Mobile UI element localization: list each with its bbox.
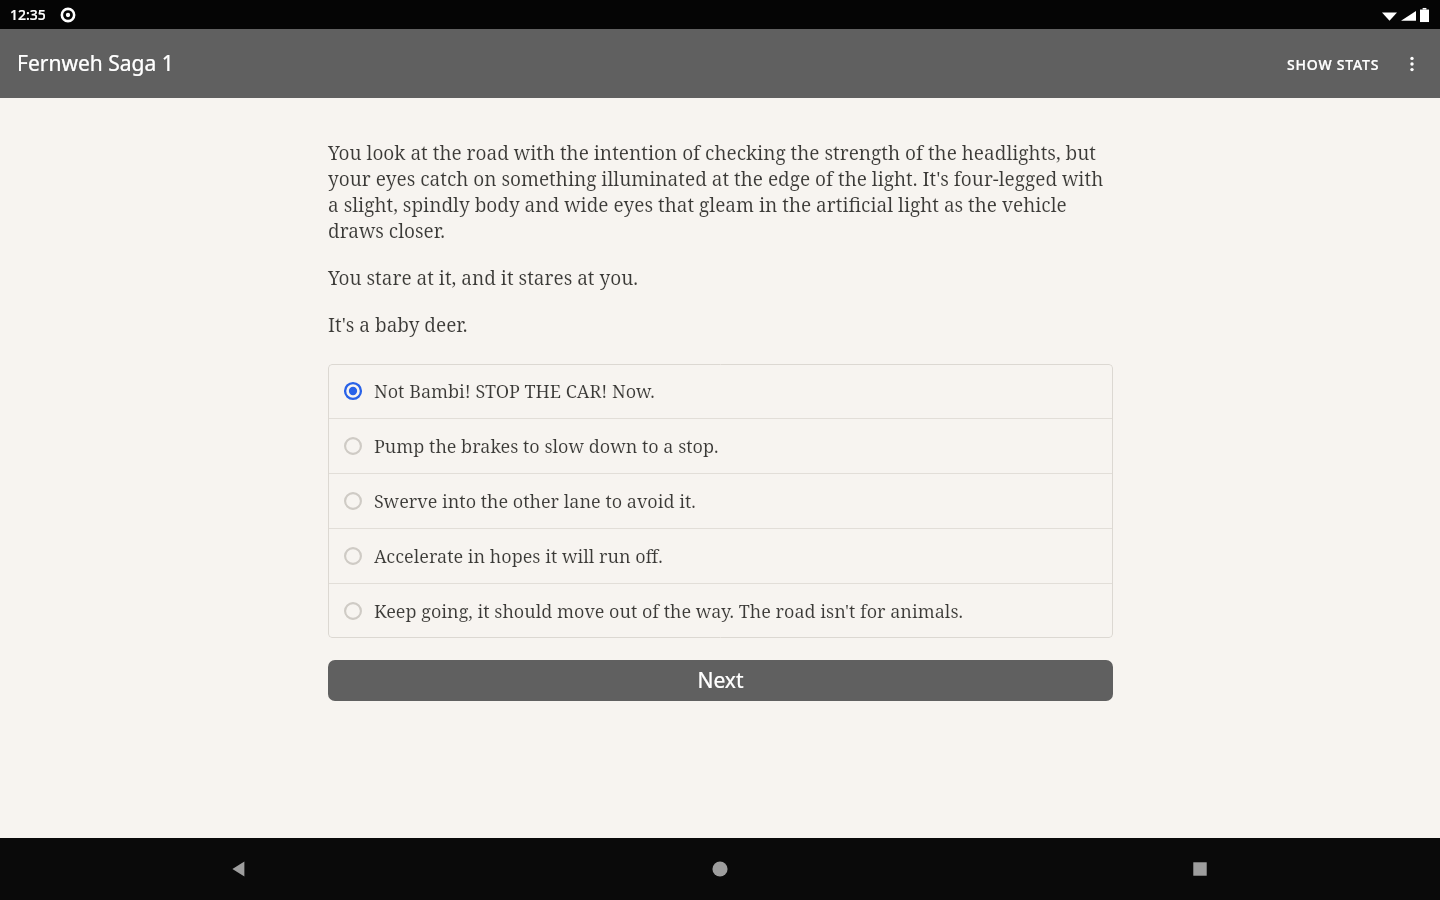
staticText: Fernweh Saga 1 (17, 49, 174, 78)
button[interactable]: Pump the brakes to slow down to a stop. (328, 419, 1113, 473)
button[interactable]: Back (0, 838, 480, 900)
button[interactable]: Recent apps (960, 838, 1440, 900)
button[interactable]: Keep going, it should move out of the wa… (328, 584, 1113, 638)
staticText: Not Bambi! STOP THE CAR! Now. (374, 379, 655, 404)
staticText: It's a baby deer. (328, 312, 468, 338)
staticText: Accelerate in hopes it will run off. (374, 544, 663, 569)
staticText: You look at the road with the intention … (328, 140, 1113, 244)
staticText: You stare at it, and it stares at you. (328, 265, 638, 291)
button[interactable]: Next (328, 660, 1113, 701)
staticText: Keep going, it should move out of the wa… (374, 599, 964, 624)
button[interactable]: Swerve into the other lane to avoid it. (328, 474, 1113, 528)
staticText: Swerve into the other lane to avoid it. (374, 489, 696, 514)
staticText: Pump the brakes to slow down to a stop. (374, 434, 719, 459)
staticText: 12:35 (10, 5, 46, 24)
button[interactable]: Accelerate in hopes it will run off. (328, 529, 1113, 583)
staticText: Next (697, 666, 744, 695)
button[interactable]: More options (1388, 40, 1436, 88)
button[interactable]: Not Bambi! STOP THE CAR! Now. (328, 364, 1113, 418)
button[interactable]: Home (480, 838, 960, 900)
button[interactable]: SHOW STATS (1279, 41, 1388, 88)
staticText: SHOW STATS (1287, 55, 1380, 74)
